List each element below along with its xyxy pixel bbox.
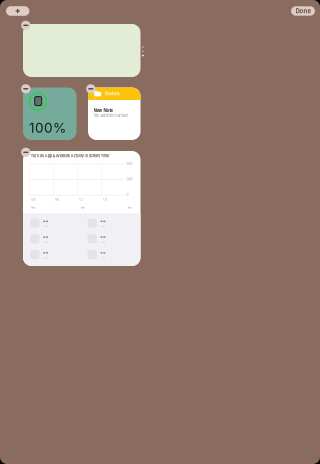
- staticText: 60m: [126, 161, 133, 166]
- staticText: 06: [55, 197, 59, 202]
- staticText: Turn on App & Website Activity in Screen…: [31, 153, 110, 158]
- staticText: 30m: [126, 177, 133, 181]
- button[interactable]: Remove widget: [21, 21, 30, 30]
- button[interactable]: Remove widget: [86, 84, 95, 93]
- button[interactable]: 100%: [23, 87, 76, 140]
- staticText: New Note: [93, 108, 113, 113]
- button[interactable]: Done: [291, 6, 315, 16]
- staticText: 100%: [29, 119, 66, 136]
- button[interactable]: Remove widget: [21, 148, 30, 157]
- button[interactable]: Add widget: [6, 6, 29, 16]
- staticText: No additional text: [93, 113, 127, 118]
- button[interactable]: Turn on App & Website Activity in Screen…: [23, 151, 140, 266]
- staticText: 00: [31, 197, 35, 202]
- staticText: 18: [103, 197, 107, 202]
- button[interactable]: Notes: [88, 87, 140, 140]
- staticText: 0: [126, 192, 128, 197]
- button[interactable]: Widget: [23, 24, 140, 77]
- staticText: Done: [295, 7, 310, 15]
- button[interactable]: Remove widget: [21, 84, 30, 93]
- staticText: 12: [79, 197, 83, 202]
- staticText: Notes: [105, 90, 120, 96]
